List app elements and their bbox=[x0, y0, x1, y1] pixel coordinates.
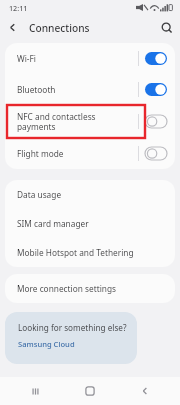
button[interactable]: Back bbox=[0, 15, 25, 40]
button[interactable]: NFC and contactless payments bbox=[5, 105, 175, 138]
staticText: Bluetooth bbox=[17, 84, 134, 95]
button[interactable]: Recents bbox=[15, 377, 55, 405]
button[interactable]: Switch on bbox=[145, 83, 167, 96]
button[interactable]: Switch off bbox=[145, 147, 167, 160]
button[interactable]: Home bbox=[70, 377, 110, 405]
staticText: NFC and contactless payments bbox=[17, 111, 134, 132]
button[interactable]: SIM card manager bbox=[5, 209, 175, 238]
staticText: SIM card manager bbox=[17, 218, 89, 229]
staticText: Connections bbox=[29, 21, 90, 35]
button[interactable]: Looking for something else? bbox=[5, 312, 137, 364]
button[interactable]: Data usage bbox=[5, 180, 175, 209]
button[interactable]: Flight mode bbox=[5, 138, 175, 169]
button[interactable]: More connection settings bbox=[5, 274, 175, 303]
button[interactable]: Bluetooth bbox=[5, 74, 175, 105]
button[interactable]: Mobile Hotspot and Tethering bbox=[5, 238, 175, 267]
staticText: Mobile Hotspot and Tethering bbox=[17, 247, 134, 258]
button[interactable]: Wi-Fi bbox=[5, 43, 175, 74]
button[interactable]: Switch off bbox=[145, 115, 167, 128]
staticText: Samsung Cloud bbox=[18, 339, 75, 349]
button[interactable]: Search bbox=[153, 15, 180, 40]
staticText: 12:11 bbox=[9, 3, 28, 13]
staticText: Looking for something else? bbox=[18, 322, 127, 333]
staticText: Wi-Fi bbox=[17, 53, 134, 64]
staticText: Data usage bbox=[17, 189, 62, 200]
button[interactable]: Back bbox=[125, 377, 165, 405]
staticText: Flight mode bbox=[17, 148, 134, 159]
button[interactable]: Switch on bbox=[145, 52, 167, 65]
staticText: More connection settings bbox=[17, 283, 116, 294]
